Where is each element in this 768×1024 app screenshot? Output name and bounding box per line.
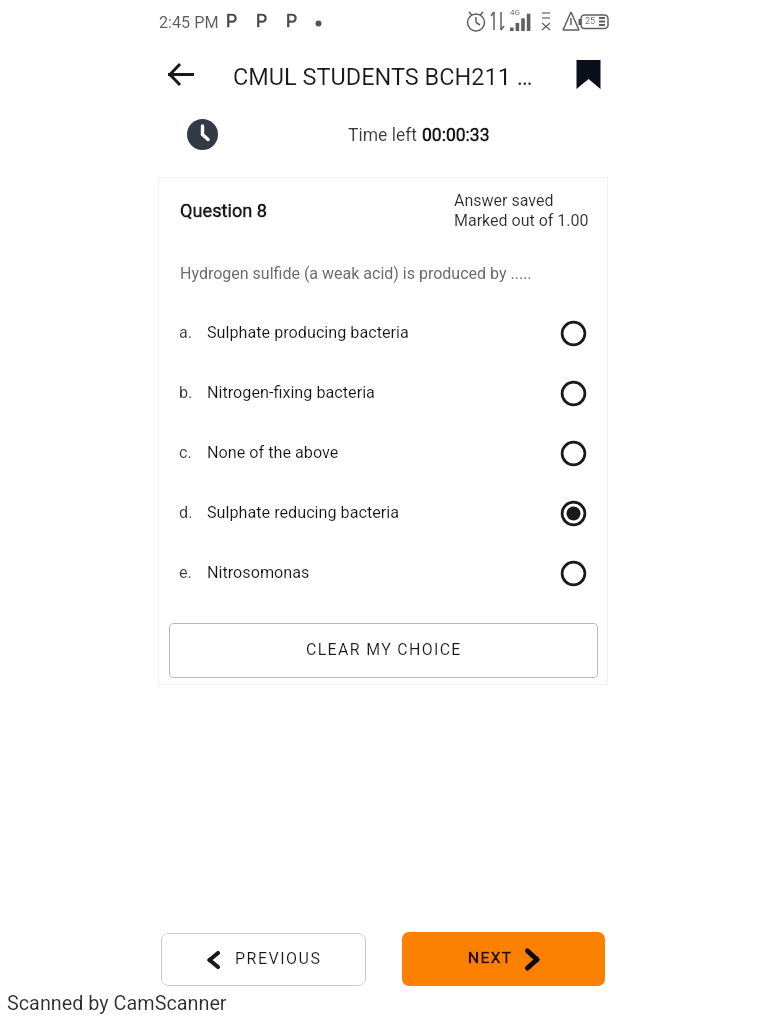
button[interactable]: c. — [158, 423, 608, 483]
staticText: 4G — [510, 8, 520, 17]
staticText: CLEAR MY CHOICE — [306, 640, 462, 659]
staticText: Time left — [348, 125, 422, 146]
staticText: Sulphate reducing bacteria — [207, 503, 400, 522]
button[interactable]: a. — [158, 303, 608, 363]
button[interactable]: e. — [158, 543, 608, 603]
staticText: Nitrogen-fixing bacteria — [207, 383, 375, 402]
staticText: P — [286, 11, 298, 32]
button[interactable]: Back — [159, 52, 203, 96]
staticText: P — [226, 11, 238, 32]
staticText: d. — [179, 503, 193, 522]
staticText: NEXT — [468, 949, 513, 967]
button[interactable]: PREVIOUS — [161, 933, 366, 986]
staticText: Nitrosomonas — [207, 563, 310, 582]
staticText: P — [256, 11, 268, 32]
button[interactable]: Bookmark — [566, 52, 610, 96]
staticText: 2:45 PM — [159, 13, 219, 32]
button[interactable]: d. — [158, 483, 608, 543]
staticText: CMUL STUDENTS BCH211 … — [233, 63, 533, 91]
staticText: a. — [179, 323, 193, 342]
staticText: Sulphate producing bacteria — [207, 323, 409, 342]
button[interactable]: b. — [158, 363, 608, 423]
staticText: Hydrogen sulfide (a weak acid) is produc… — [180, 264, 532, 283]
button[interactable]: NEXT — [402, 932, 605, 986]
staticText: Marked out of 1.00 — [454, 211, 589, 230]
staticText: c. — [179, 443, 192, 462]
staticText: e. — [179, 563, 192, 582]
staticText: PREVIOUS — [235, 949, 322, 968]
staticText: None of the above — [207, 443, 339, 462]
staticText: 25 — [585, 16, 596, 27]
staticText: 00:00:33 — [422, 125, 490, 146]
staticText: Scanned by CamScanner — [7, 992, 227, 1015]
staticText: b. — [179, 383, 193, 402]
staticText: Question 8 — [180, 200, 268, 221]
staticText: Answer saved — [454, 191, 554, 210]
button[interactable]: CLEAR MY CHOICE — [169, 623, 598, 678]
